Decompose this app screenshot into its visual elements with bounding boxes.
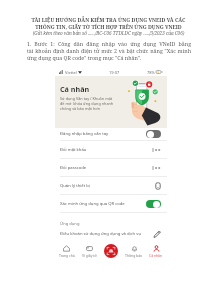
staticText: Đổi passcode: [60, 165, 152, 171]
staticText: Quản lý thiết bị: [60, 183, 155, 189]
staticText: Thông báo: [125, 253, 143, 258]
staticText: Ví giấy tờ: [82, 253, 97, 258]
button[interactable]: Devices: [155, 182, 161, 190]
staticText: Viettel: [65, 70, 77, 75]
staticText: Cá nhân: [149, 253, 163, 258]
button[interactable]: Quản lý thiết bị: [55, 177, 167, 194]
button[interactable]: Điều khoản sử dụng ứng dụng và dịch vụ: [55, 227, 167, 241]
staticText: Trang chủ: [59, 253, 75, 258]
button[interactable]: Open: [152, 147, 161, 153]
staticText: Đăng nhập bằng vân tay: [60, 131, 146, 137]
button[interactable]: Switch off: [146, 130, 161, 138]
button[interactable]: Edit: [153, 230, 161, 238]
button[interactable]: Cá nhân: [145, 241, 167, 262]
staticText: Cá nhân: [60, 84, 90, 94]
button[interactable]: Scan QR code: [104, 244, 118, 258]
button[interactable]: Đổi passcode: [55, 159, 167, 176]
staticText: (Gửi kèm theo văn bản số ....../BC-C06 T…: [27, 30, 190, 36]
staticText: 19:07: [109, 70, 120, 75]
staticText: Điều khoản sử dụng ứng dụng và dịch vụ: [60, 231, 153, 237]
button[interactable]: Đăng nhập bằng vân tay: [55, 128, 167, 140]
staticText: Sử dụng Vân tay / Khuôn mặt để mở khóa ứ…: [60, 96, 114, 111]
staticText: 78%: [147, 70, 155, 75]
staticText: 1. Bước 1: Công dân đăng nhập vào ứng dụ…: [27, 40, 191, 61]
button[interactable]: Thông báo: [123, 241, 145, 262]
staticText: Đổi mật khẩu: [60, 147, 152, 153]
button[interactable]: Ví giấy tờ: [78, 241, 101, 262]
button[interactable]: Xác minh ứng dụng qua QR code: [55, 195, 167, 212]
button[interactable]: Trang chủ: [55, 241, 78, 262]
staticText: TÀI LIỆU HƯỚNG DẪN KIỂM TRA ỨNG DỤNG VNE…: [27, 17, 190, 31]
button[interactable]: Đổi mật khẩu: [55, 141, 167, 158]
staticText: Ứng dụng: [60, 221, 80, 227]
button[interactable]: Open: [152, 165, 161, 171]
staticText: Xác minh ứng dụng qua QR code: [60, 201, 146, 207]
button[interactable]: Switch on: [146, 200, 161, 208]
